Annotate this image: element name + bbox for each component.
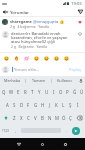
button[interactable]: Emoji <box>31 53 41 63</box>
staticText: İ <box>77 102 79 108</box>
button[interactable]: Emoji <box>51 53 61 63</box>
button[interactable]: Emoji <box>61 53 71 63</box>
button[interactable]: Home <box>36 138 48 150</box>
button[interactable]: Ç <box>67 111 74 124</box>
button[interactable]: Ğ <box>71 85 78 98</box>
button[interactable]: Tamam <box>26 76 51 85</box>
button[interactable]: İ <box>74 98 81 111</box>
staticText: N <box>48 115 52 121</box>
button[interactable]: F <box>25 98 32 111</box>
staticText: M <box>55 115 59 121</box>
staticText: @omaygupta 👍 <box>33 19 65 24</box>
staticText: O <box>59 89 63 95</box>
button[interactable]: Like <box>77 31 83 37</box>
staticText: E <box>17 89 20 95</box>
staticText: K <box>55 102 58 108</box>
staticText: sharegame <box>10 19 32 24</box>
button[interactable]: Y <box>36 85 43 98</box>
button[interactable]: Ü <box>78 85 85 98</box>
staticText: P <box>66 89 69 95</box>
staticText: Kullanıcı <box>57 78 72 83</box>
button[interactable]: Emoji <box>21 53 31 63</box>
button[interactable]: Merhaba <box>0 76 25 85</box>
staticText: , <box>15 128 17 133</box>
button[interactable]: D <box>18 98 25 111</box>
button[interactable]: Voice input <box>77 76 85 85</box>
staticText: F <box>27 102 30 108</box>
staticText: Paylaş <box>69 67 81 72</box>
button[interactable]: Like <box>77 19 83 25</box>
button[interactable]: Emoji <box>1 53 11 63</box>
staticText: Ş <box>69 102 72 108</box>
button[interactable]: T <box>29 85 36 98</box>
staticText: S <box>13 102 16 108</box>
button[interactable]: Recents <box>59 138 71 150</box>
button[interactable]: A <box>4 98 11 111</box>
staticText: G <box>34 102 38 108</box>
staticText: T <box>31 89 34 95</box>
staticText: C <box>27 115 30 121</box>
button[interactable]: Backspace <box>74 111 85 124</box>
button[interactable]: C <box>25 111 32 124</box>
button[interactable]: Emoji <box>41 53 51 63</box>
button[interactable]: Z <box>11 111 18 124</box>
staticText: V <box>34 115 37 121</box>
staticText: I <box>53 89 55 95</box>
button[interactable]: , <box>11 124 21 137</box>
staticText: Ö <box>62 115 66 121</box>
button[interactable]: O <box>57 85 64 98</box>
staticText: Ç <box>69 115 72 121</box>
button[interactable]: Q <box>0 85 8 98</box>
button[interactable]: Share <box>75 7 85 16</box>
staticText: Tamam <box>32 78 46 83</box>
button[interactable]: W <box>8 85 15 98</box>
button[interactable]: H <box>39 98 46 111</box>
staticText: deniizerlrr Banadaki ervah kazandıran, e… <box>11 31 77 44</box>
staticText: Merhaba <box>4 78 21 83</box>
staticText: W <box>9 89 14 95</box>
button[interactable]: Emoji <box>11 53 21 63</box>
staticText: B <box>41 115 44 121</box>
staticText: 19:03 <box>71 1 82 7</box>
button[interactable]: Ö <box>60 111 67 124</box>
button[interactable]: Back <box>13 138 25 150</box>
button[interactable]: Ş <box>67 98 74 111</box>
button[interactable]: I <box>50 85 57 98</box>
button[interactable]: B <box>39 111 46 124</box>
button[interactable]: X <box>18 111 25 124</box>
staticText: Ü <box>80 89 84 95</box>
button[interactable]: K <box>53 98 60 111</box>
staticText: H <box>41 102 45 108</box>
staticText: J <box>49 102 51 108</box>
staticText: Yorum ekle... <box>14 67 40 73</box>
button[interactable]: L <box>60 98 67 111</box>
button[interactable]: ?123 <box>0 124 11 137</box>
button[interactable]: Back <box>0 7 10 16</box>
staticText: ?123 <box>2 129 9 133</box>
staticText: Y <box>38 89 41 95</box>
button[interactable]: Shift <box>0 111 11 124</box>
staticText: D <box>20 102 24 108</box>
button[interactable]: J <box>46 98 53 111</box>
button[interactable]: V <box>32 111 39 124</box>
staticText: 2 g Beğenme Yanıtla <box>11 44 48 49</box>
button[interactable]: Send <box>72 127 80 135</box>
button[interactable]: R <box>22 85 29 98</box>
button[interactable]: E <box>15 85 22 98</box>
button[interactable]: Kullanıcı <box>52 76 77 85</box>
button[interactable]: N <box>46 111 53 124</box>
button[interactable]: G <box>32 98 39 111</box>
staticText: A <box>6 102 9 108</box>
staticText: Yorumlar <box>10 9 29 15</box>
button[interactable]: S <box>11 98 18 111</box>
button[interactable]: P <box>64 85 71 98</box>
staticText: L <box>62 102 65 108</box>
staticText: . <box>66 128 68 133</box>
button[interactable]: M <box>53 111 60 124</box>
button[interactable]: U <box>43 85 50 98</box>
staticText: Ğ <box>73 89 77 95</box>
staticText: Q <box>2 89 6 95</box>
button[interactable]: Paylaş <box>68 66 82 73</box>
